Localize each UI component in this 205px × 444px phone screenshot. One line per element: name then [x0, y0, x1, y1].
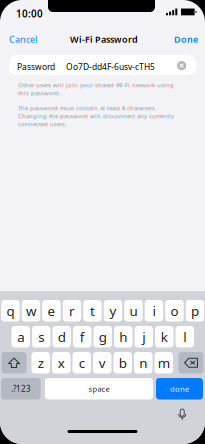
staticText: f	[80, 328, 85, 346]
staticText: z	[38, 354, 44, 372]
staticText: space	[88, 384, 109, 394]
button[interactable]: g	[93, 326, 112, 347]
button[interactable]: b	[113, 352, 132, 373]
button[interactable]: s	[32, 326, 50, 347]
button[interactable]: Done	[168, 28, 204, 50]
staticText: r	[69, 302, 75, 320]
button[interactable]: Clear text	[174, 58, 189, 73]
staticText: Done	[174, 33, 198, 45]
staticText: t	[90, 302, 95, 320]
button[interactable]: space	[45, 378, 153, 399]
button[interactable]: Shift	[1, 352, 26, 373]
button[interactable]: n	[134, 352, 152, 373]
button[interactable]: v	[93, 352, 111, 373]
button[interactable]: a	[11, 326, 30, 347]
staticText: Other users will join your shared Wi-Fi …	[18, 81, 174, 97]
button[interactable]: e	[42, 300, 61, 321]
staticText: o	[170, 302, 178, 320]
button[interactable]: r	[63, 300, 81, 321]
staticText: i	[152, 302, 155, 320]
button[interactable]: u	[124, 300, 143, 321]
button[interactable]: Cancel	[3, 28, 43, 50]
staticText: k	[161, 328, 168, 346]
staticText: q	[6, 302, 14, 320]
button[interactable]: l	[175, 326, 194, 347]
staticText: Oo7D-dd4F-6usv-cTH5	[66, 61, 155, 72]
staticText: m	[158, 354, 170, 372]
staticText: done	[170, 383, 189, 394]
button[interactable]: d	[52, 326, 71, 347]
button[interactable]: z	[31, 352, 50, 373]
staticText: .?123	[11, 383, 31, 394]
staticText: e	[47, 302, 55, 320]
button[interactable]: k	[155, 326, 173, 347]
staticText: x	[58, 354, 65, 372]
staticText: l	[183, 328, 186, 346]
staticText: 10:00	[16, 7, 43, 20]
staticText: n	[139, 354, 147, 372]
button[interactable]: done	[156, 378, 203, 399]
staticText: Password	[17, 61, 55, 72]
button[interactable]: c	[72, 352, 91, 373]
staticText: Cancel	[9, 33, 37, 45]
button[interactable]: x	[52, 352, 70, 373]
staticText: c	[79, 354, 85, 372]
staticText: p	[191, 302, 199, 320]
staticText: j	[142, 328, 145, 346]
staticText: d	[58, 328, 66, 346]
staticText: a	[17, 328, 24, 346]
staticText: h	[119, 328, 127, 346]
button[interactable]: Dictate	[175, 405, 189, 423]
button[interactable]: o	[165, 300, 184, 321]
button[interactable]: p	[186, 300, 204, 321]
staticText: Wi-Fi Password	[70, 33, 138, 45]
button[interactable]: j	[134, 326, 153, 347]
staticText: g	[99, 328, 107, 346]
button[interactable]: t	[83, 300, 102, 321]
button[interactable]: w	[22, 300, 40, 321]
staticText: The password must contain at least 8 cha…	[18, 104, 174, 128]
button[interactable]: .?123	[1, 378, 41, 399]
staticText: u	[129, 302, 137, 320]
button[interactable]: h	[114, 326, 132, 347]
button[interactable]: q	[1, 300, 20, 321]
button[interactable]: f	[73, 326, 91, 347]
staticText: s	[38, 328, 44, 346]
staticText: w	[26, 302, 36, 320]
staticText: v	[99, 354, 106, 372]
button[interactable]: m	[154, 352, 173, 373]
button[interactable]: Delete	[178, 352, 203, 373]
button[interactable]: y	[104, 300, 122, 321]
staticText: y	[109, 302, 116, 320]
staticText: b	[119, 354, 127, 372]
button[interactable]: i	[145, 300, 163, 321]
